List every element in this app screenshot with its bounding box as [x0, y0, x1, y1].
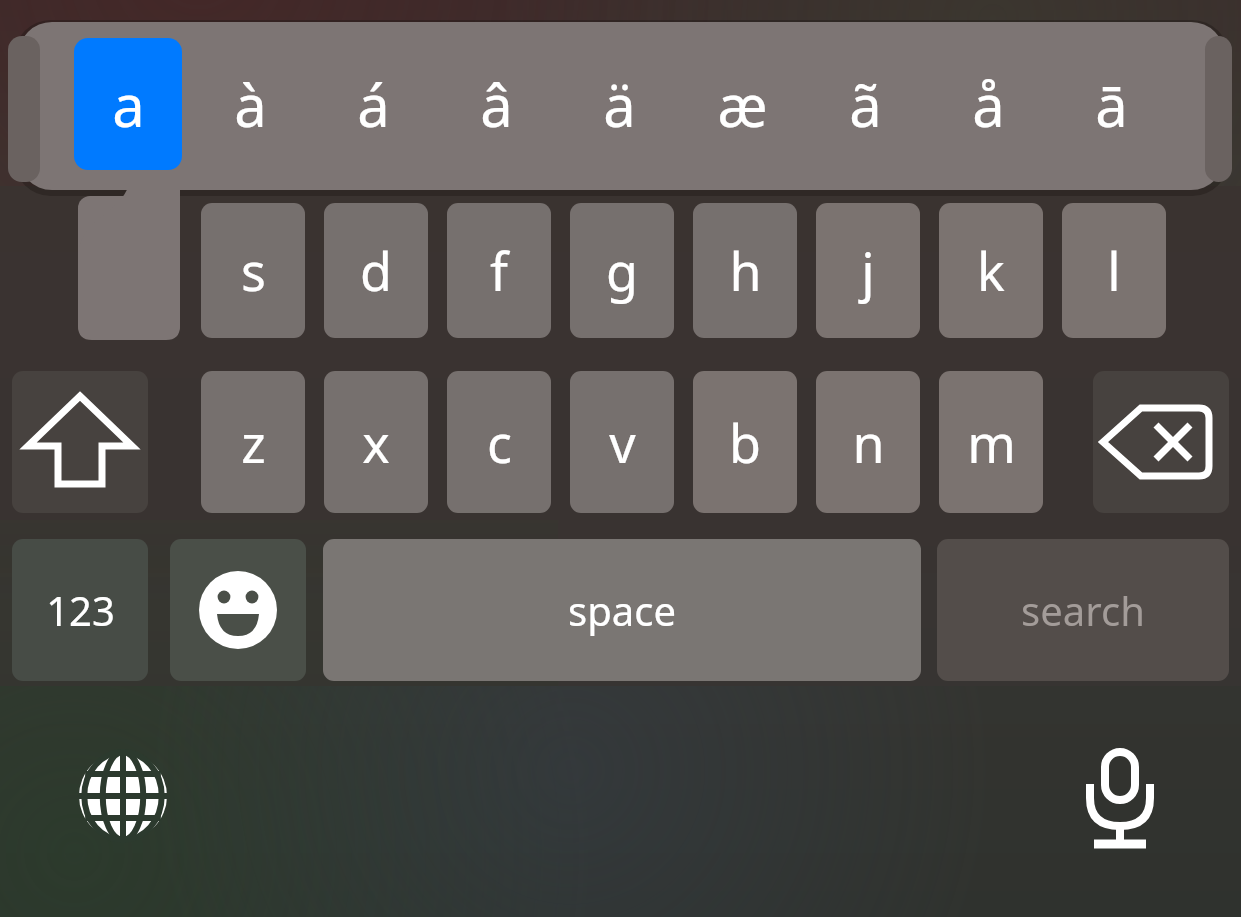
button[interactable]: b [693, 371, 797, 513]
button[interactable]: ä [565, 38, 673, 170]
staticText: d [360, 235, 392, 306]
button[interactable]: s [201, 203, 305, 338]
staticText: j [861, 235, 875, 306]
button[interactable]: ā [1057, 38, 1165, 170]
button[interactable]: v [570, 371, 674, 513]
button[interactable]: Emoji [170, 539, 306, 681]
staticText: ā [1095, 65, 1128, 144]
button[interactable]: à [196, 38, 304, 170]
staticText: c [487, 407, 512, 478]
staticText: g [606, 235, 638, 306]
staticText: f [490, 235, 508, 306]
button[interactable]: x [324, 371, 428, 513]
button[interactable]: Dictation [1076, 748, 1164, 844]
button[interactable]: å [934, 38, 1042, 170]
staticText: â [480, 65, 513, 144]
staticText: v [609, 407, 636, 478]
staticText: å [972, 65, 1005, 144]
staticText: m [967, 407, 1016, 478]
staticText: search [1021, 583, 1145, 637]
staticText: k [977, 235, 1005, 306]
button[interactable]: g [570, 203, 674, 338]
button[interactable]: a [74, 38, 182, 170]
staticText: x [362, 407, 390, 478]
button[interactable]: f [447, 203, 551, 338]
button[interactable]: Shift [12, 371, 148, 513]
staticText: æ [717, 65, 768, 144]
button[interactable]: â [442, 38, 550, 170]
button[interactable]: k [939, 203, 1043, 338]
staticText: a [112, 65, 145, 144]
staticText: z [241, 407, 266, 478]
button[interactable]: j [816, 203, 920, 338]
staticText: n [852, 407, 885, 478]
staticText: á [357, 65, 390, 144]
staticText: ã [849, 65, 882, 144]
button[interactable]: space [323, 539, 921, 681]
button[interactable]: n [816, 371, 920, 513]
button[interactable]: ã [811, 38, 919, 170]
staticText: 123 [46, 583, 115, 637]
button[interactable]: 123 [12, 539, 148, 681]
button[interactable]: l [1062, 203, 1166, 338]
button[interactable]: m [939, 371, 1043, 513]
button[interactable]: æ [688, 38, 796, 170]
button[interactable]: Backspace [1093, 371, 1229, 513]
staticText: s [241, 235, 266, 306]
button[interactable]: h [693, 203, 797, 338]
staticText: ä [603, 65, 636, 144]
staticText: space [568, 583, 676, 637]
button[interactable]: c [447, 371, 551, 513]
staticText: l [1107, 235, 1121, 306]
button[interactable]: d [324, 203, 428, 338]
staticText: à [234, 65, 267, 144]
staticText: h [729, 235, 762, 306]
staticText: b [729, 407, 761, 478]
button[interactable]: Change keyboard [74, 748, 172, 844]
button[interactable]: á [319, 38, 427, 170]
button[interactable]: search [937, 539, 1229, 681]
button[interactable]: z [201, 371, 305, 513]
